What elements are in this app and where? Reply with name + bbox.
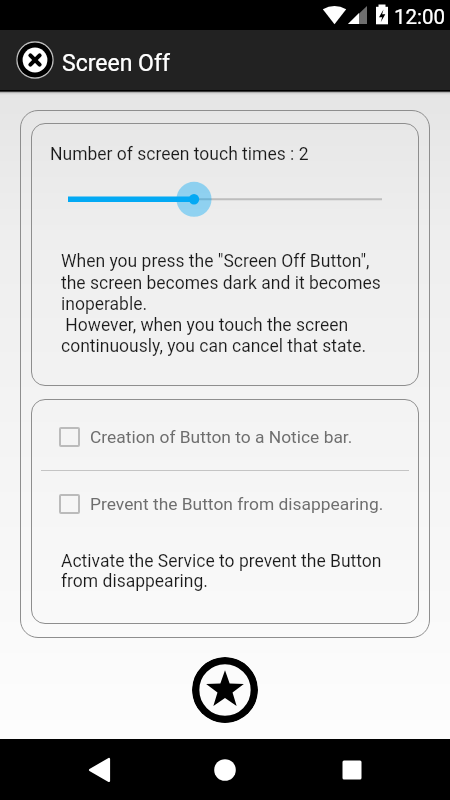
button[interactable]: Prevent the Button from disappearing. xyxy=(31,471,419,537)
button[interactable]: Screen Off Button xyxy=(192,657,258,723)
button[interactable]: Recents xyxy=(324,742,380,798)
button[interactable]: Back xyxy=(71,742,127,798)
button[interactable]: Creation of Button to a Notice bar. xyxy=(31,404,419,470)
staticText: Creation of Button to a Notice bar. xyxy=(90,427,353,447)
staticText: When you press the "Screen Off Button", … xyxy=(61,251,381,356)
staticText: Number of screen touch times : 2 xyxy=(50,144,309,165)
staticText: 12:00 xyxy=(394,5,446,29)
button[interactable]: Home xyxy=(197,742,253,798)
staticText: Prevent the Button from disappearing. xyxy=(90,494,384,514)
button[interactable] xyxy=(31,180,419,216)
staticText: Screen Off xyxy=(62,50,170,77)
staticText: Activate the Service to prevent the Butt… xyxy=(61,551,382,591)
button[interactable]: Close xyxy=(16,41,54,79)
